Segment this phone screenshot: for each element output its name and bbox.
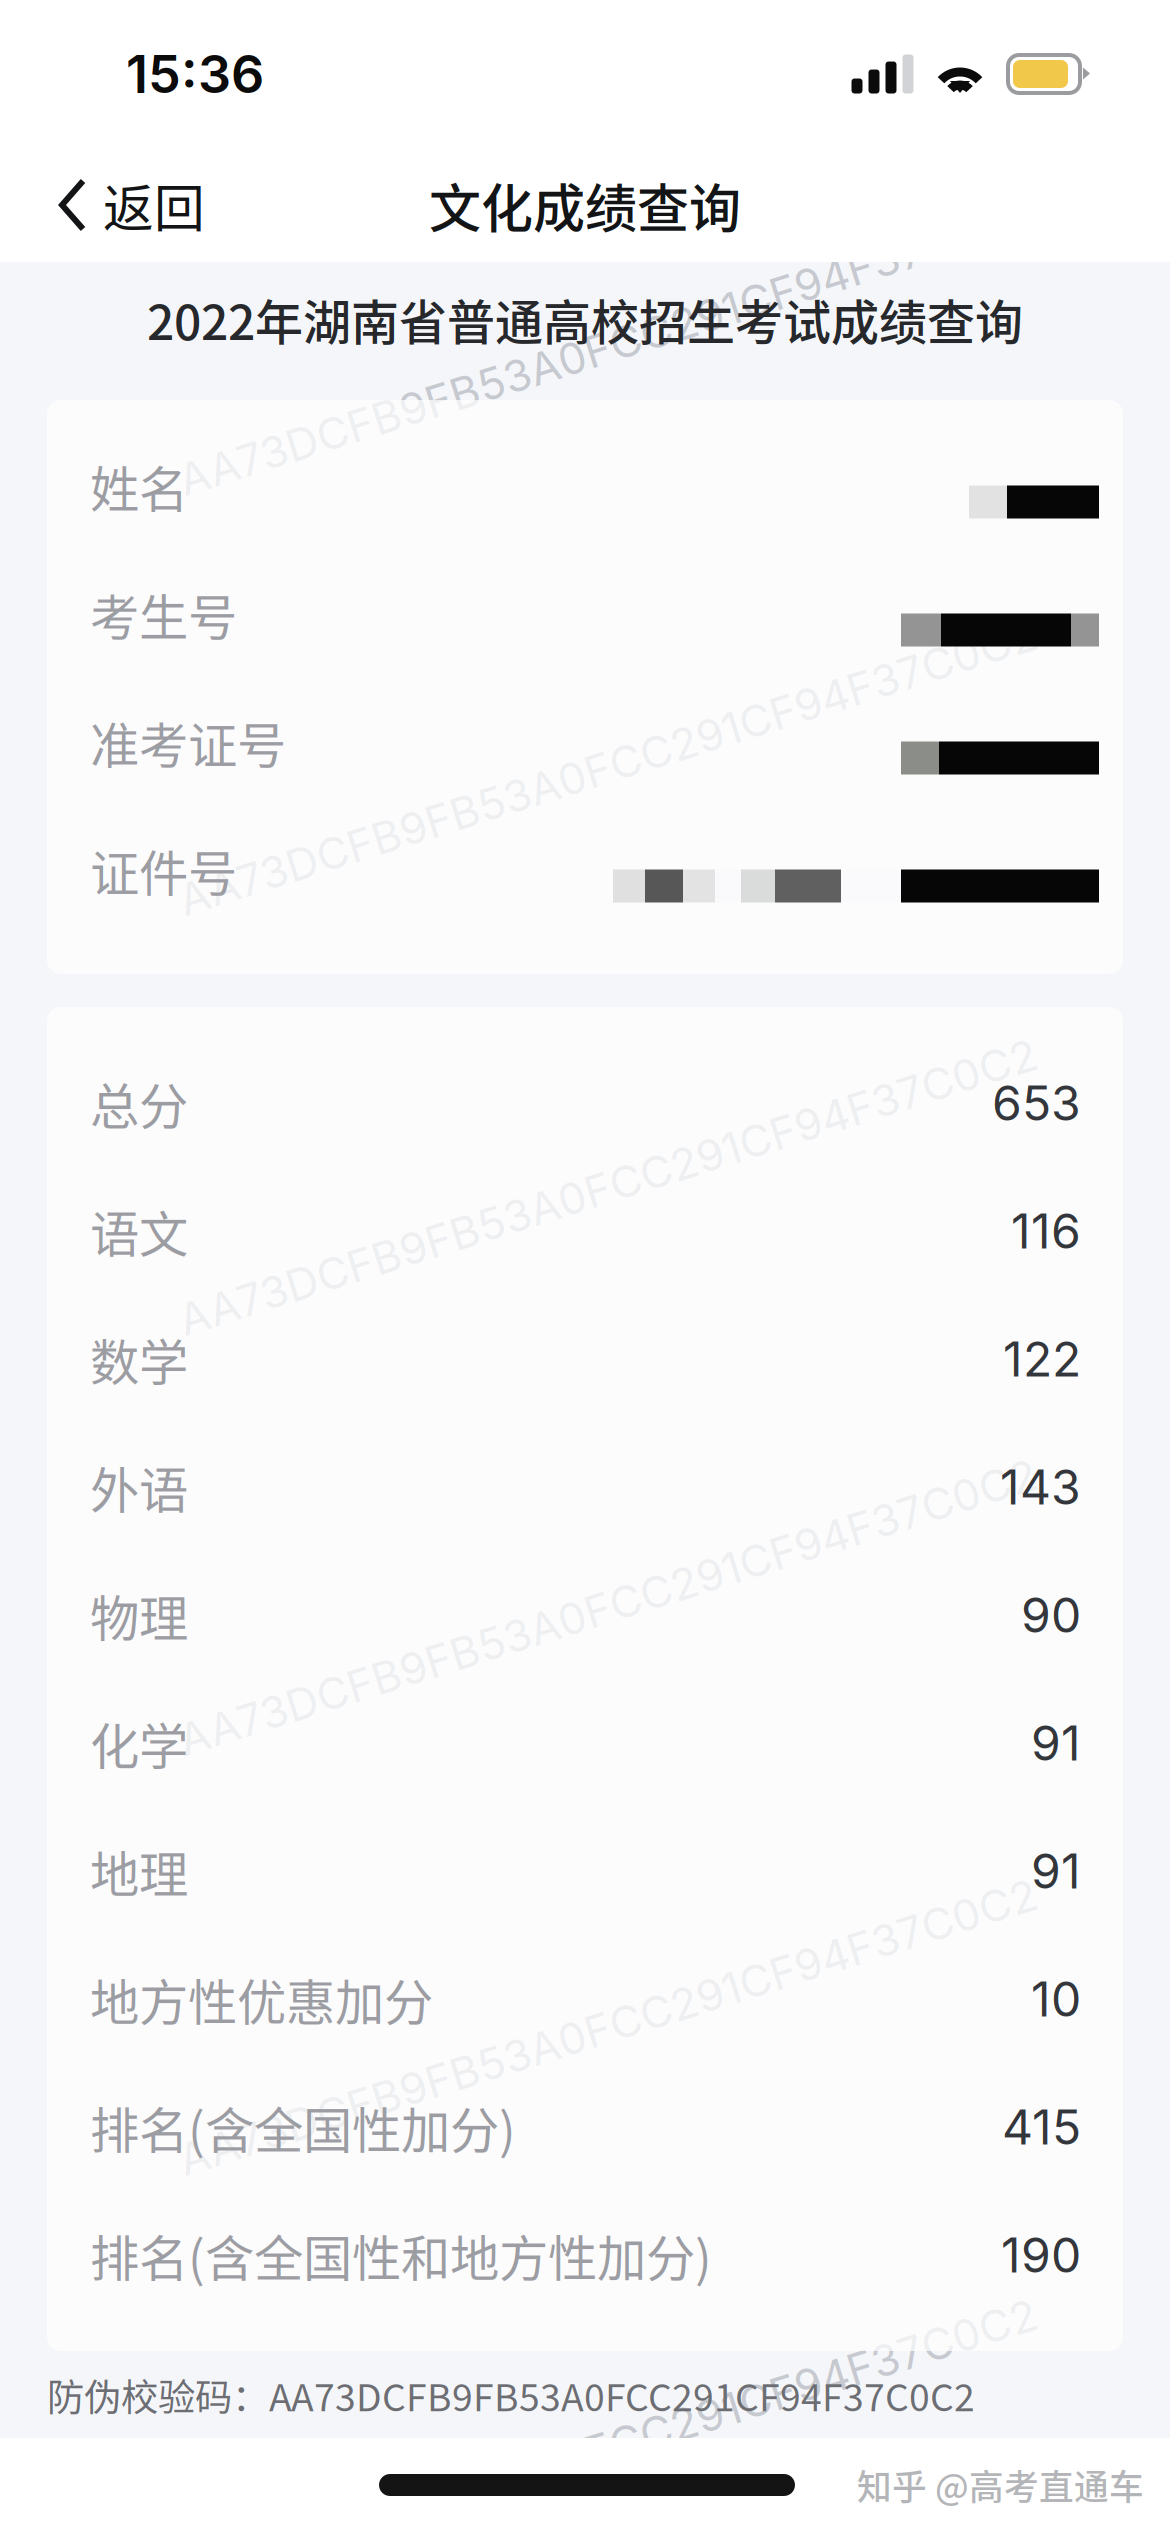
staticText: 90 — [1021, 1586, 1081, 1644]
staticText: 外语 — [90, 1451, 188, 1523]
staticText: 化学 — [90, 1707, 188, 1779]
staticText: 地理 — [90, 1835, 188, 1907]
staticText: 姓名 — [90, 450, 188, 522]
staticText: AA73DCFB9FB53A0FCC291CF94F37C0C2 — [159, 320, 1056, 374]
staticText: 116 — [1011, 1202, 1081, 1260]
staticText: 91 — [1031, 1842, 1081, 1900]
staticText: 证件号 — [90, 834, 237, 906]
staticText: 数学 — [90, 1323, 188, 1395]
staticText: 2022年湖南省普通高校招生考试成绩查询 — [147, 284, 1023, 354]
staticText: 10 — [1031, 1970, 1081, 2028]
staticText: 排名(含全国性和地方性加分) — [90, 2219, 712, 2291]
staticText: 文化成绩查询 — [429, 167, 741, 243]
staticText: 143 — [1000, 1458, 1081, 1516]
staticText: 地方性优惠加分 — [90, 1963, 433, 2035]
staticText: 15:36 — [126, 42, 264, 105]
staticText: 准考证号 — [90, 706, 286, 778]
staticText: 190 — [1001, 2226, 1081, 2284]
staticText: 653 — [992, 1074, 1081, 1132]
button[interactable]: 返回 — [0, 148, 235, 262]
staticText: AA73DCFB9FB53A0FCC291CF94F37C0C2 — [159, 1580, 1056, 1634]
staticText: 91 — [1031, 1714, 1081, 1772]
staticText: 415 — [1002, 2098, 1081, 2156]
staticText: 排名(含全国性加分) — [90, 2091, 516, 2163]
staticText: 知乎 @高考直通车 — [857, 2460, 1144, 2510]
staticText: AA73DCFB9FB53A0FCC291CF94F37C0C2 — [159, 740, 1056, 794]
staticText: AA73DCFB9FB53A0FCC291CF94F37C0C2 — [159, 2000, 1056, 2054]
staticText: 防伪校验码：AA73DCFB9FB53A0FCC291CF94F37C0C2 — [47, 2368, 975, 2422]
staticText: AA73DCFB9FB53A0FCC291CF94F37C0C2 — [159, 2420, 1056, 2474]
staticText: 物理 — [90, 1579, 188, 1651]
staticText: AA73DCFB9FB53A0FCC291CF94F37C0C2 — [159, 1160, 1056, 1214]
staticText: 总分 — [90, 1067, 188, 1139]
staticText: 语文 — [90, 1195, 188, 1267]
staticText: 返回 — [103, 168, 205, 242]
staticText: 122 — [1003, 1330, 1081, 1388]
staticText: 考生号 — [90, 578, 237, 650]
